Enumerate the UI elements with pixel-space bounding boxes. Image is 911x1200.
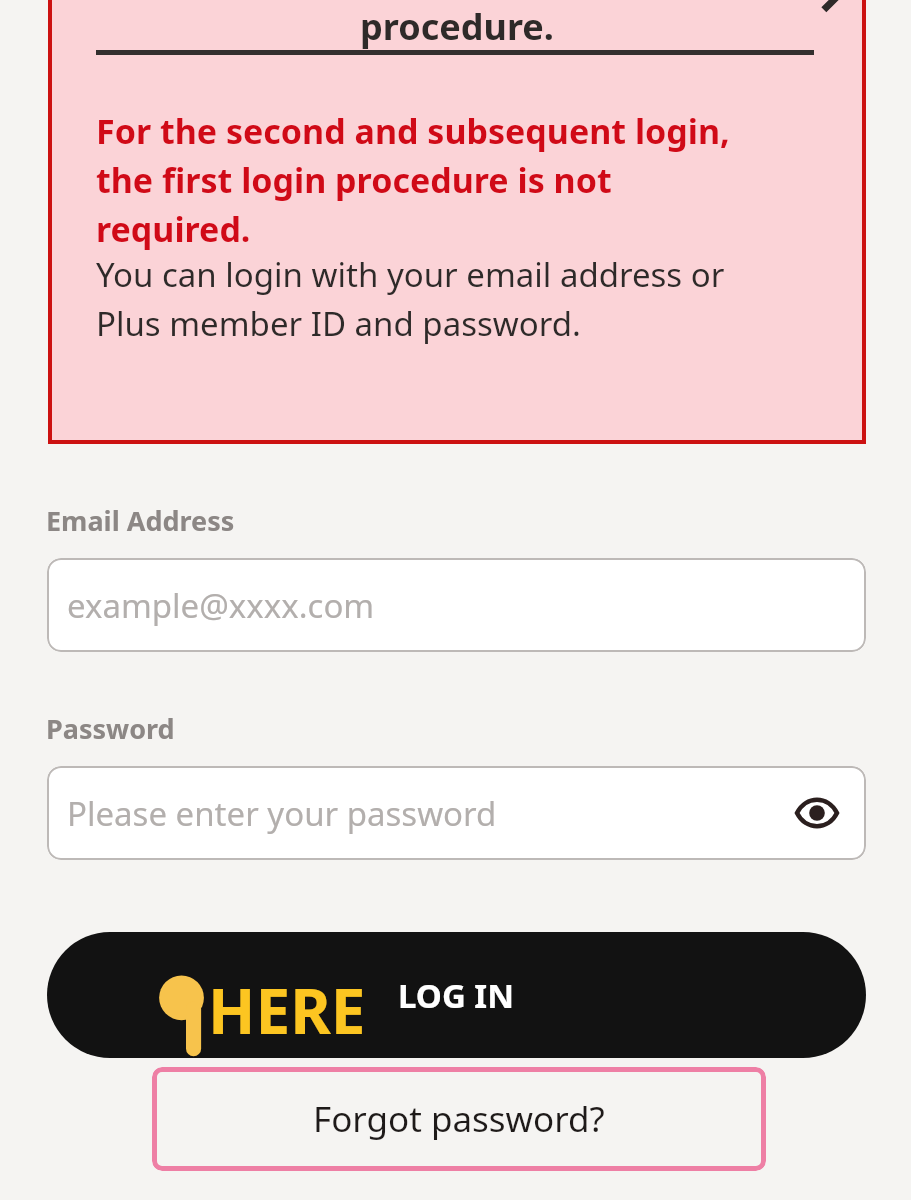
staticText: LOG IN bbox=[398, 973, 515, 1018]
button[interactable]: LOG IN bbox=[47, 932, 866, 1058]
staticText: Email Address bbox=[46, 502, 235, 539]
button[interactable]: Please enter your password bbox=[47, 766, 866, 860]
staticText: Please enter your password bbox=[67, 791, 497, 836]
button[interactable]: Forgot password? bbox=[152, 1067, 766, 1171]
staticText: You can login with your email address or… bbox=[96, 252, 725, 346]
staticText: example@xxxx.com bbox=[67, 583, 375, 628]
button[interactable]: example@xxxx.com bbox=[47, 558, 866, 652]
staticText: procedure. bbox=[48, 2, 866, 51]
staticText: Forgot password? bbox=[313, 1095, 605, 1143]
button[interactable]: Show password bbox=[794, 790, 840, 836]
button[interactable]: Expand bbox=[810, 0, 858, 16]
staticText: Password bbox=[46, 710, 175, 747]
staticText: For the second and subsequent login, the… bbox=[96, 108, 730, 252]
staticText: HERE bbox=[208, 968, 366, 1052]
